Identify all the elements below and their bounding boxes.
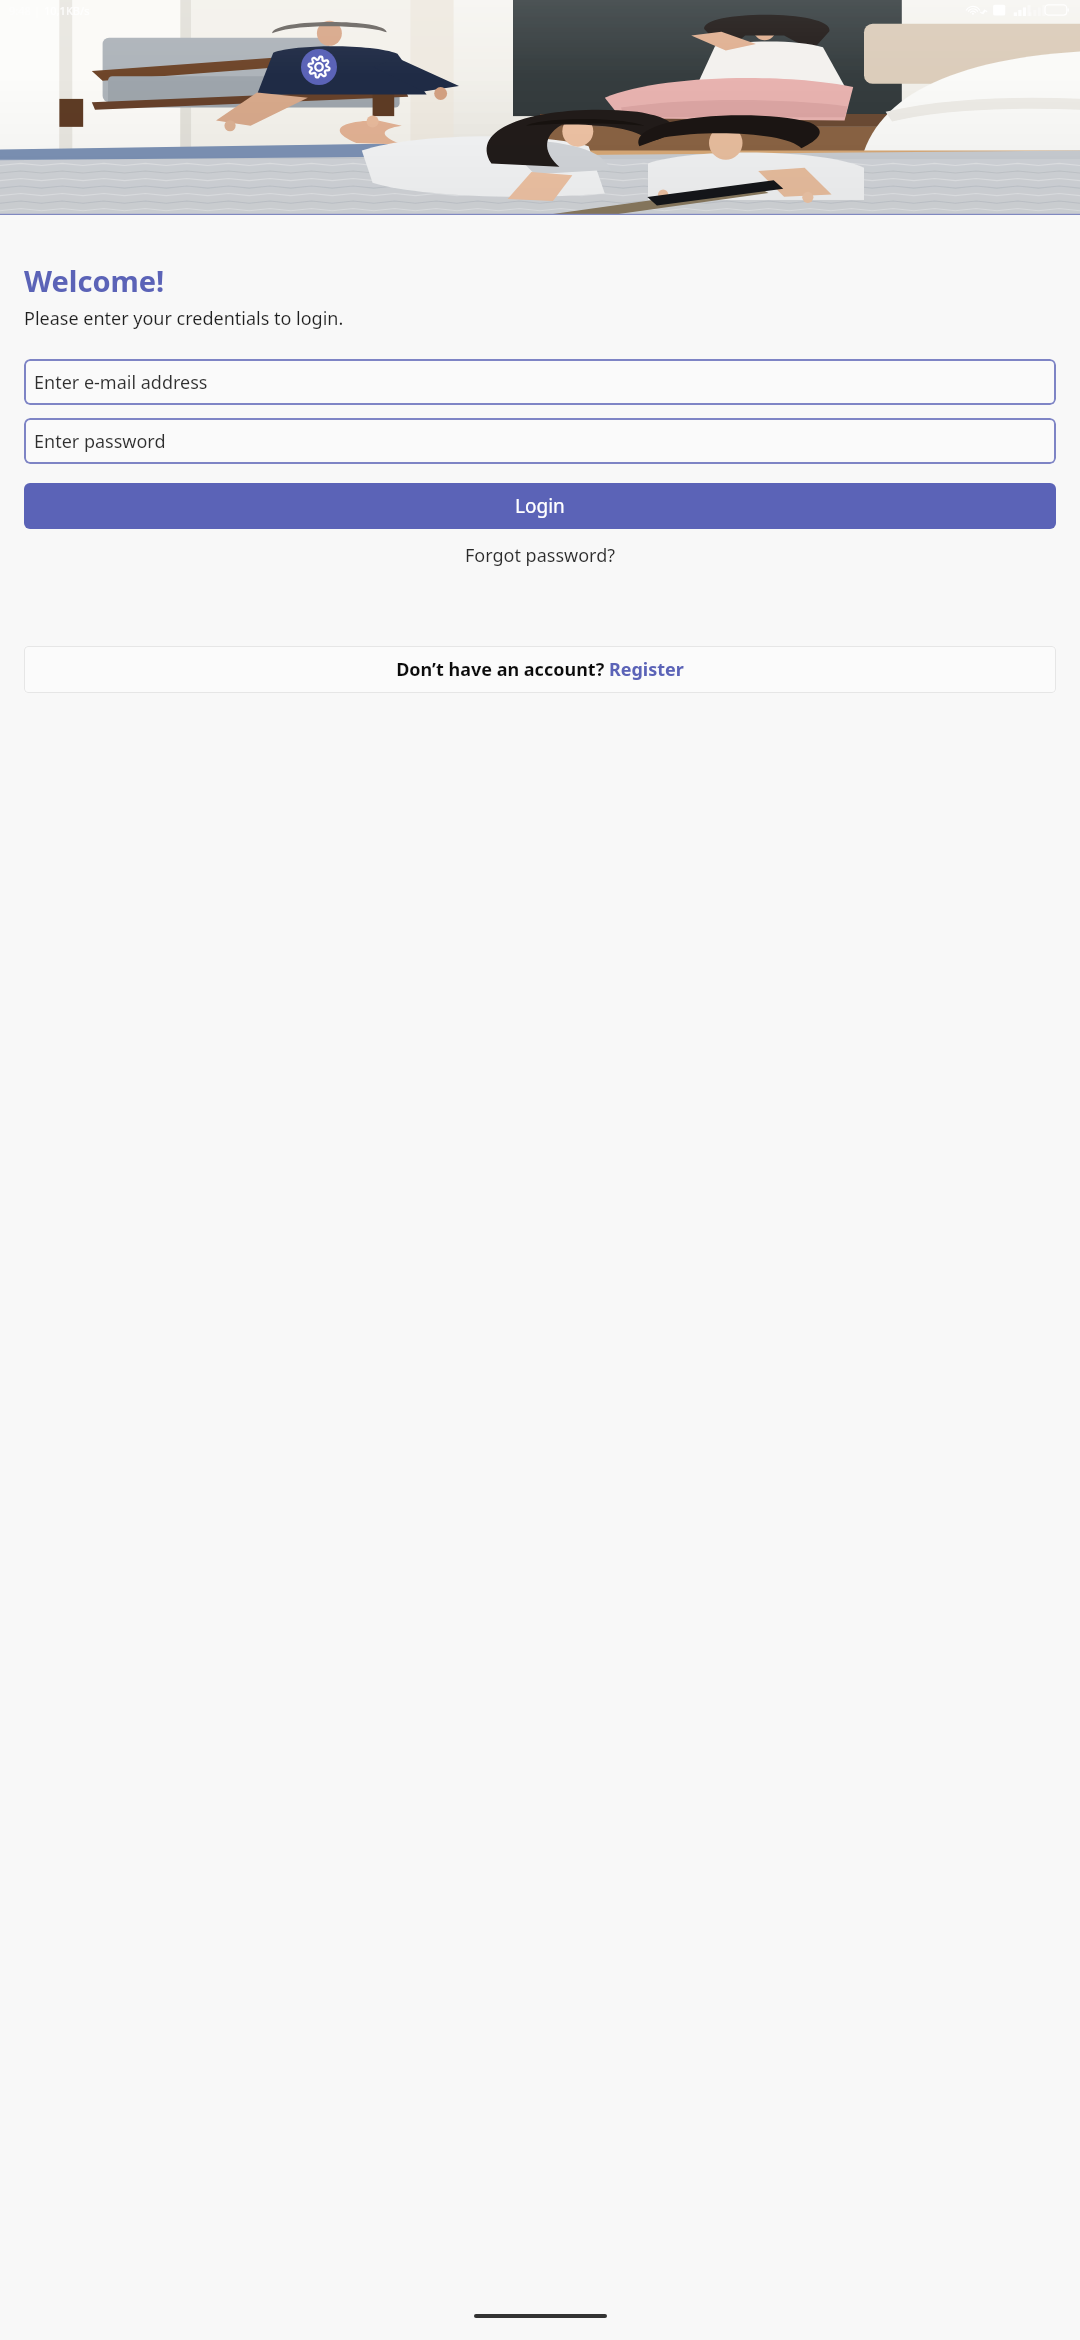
staticText: Forgot password? bbox=[465, 543, 616, 568]
button[interactable]: Don’t have an account? Register bbox=[24, 646, 1056, 693]
staticText: 10,1KB/s bbox=[44, 3, 90, 18]
button[interactable]: Forgot password? bbox=[24, 543, 1056, 568]
button[interactable]: Settings bbox=[301, 49, 337, 85]
button[interactable]: Enter password bbox=[24, 418, 1056, 464]
button[interactable]: Login bbox=[24, 483, 1056, 529]
staticText: Login bbox=[515, 493, 565, 519]
staticText: Enter password bbox=[34, 429, 166, 454]
button[interactable]: Enter e-mail address bbox=[24, 359, 1056, 405]
staticText: Enter e-mail address bbox=[34, 370, 208, 395]
staticText: Please enter your credentials to login. bbox=[24, 306, 344, 331]
staticText: Don’t have an account? Register bbox=[396, 657, 684, 682]
staticText: Welcome! bbox=[24, 261, 165, 300]
